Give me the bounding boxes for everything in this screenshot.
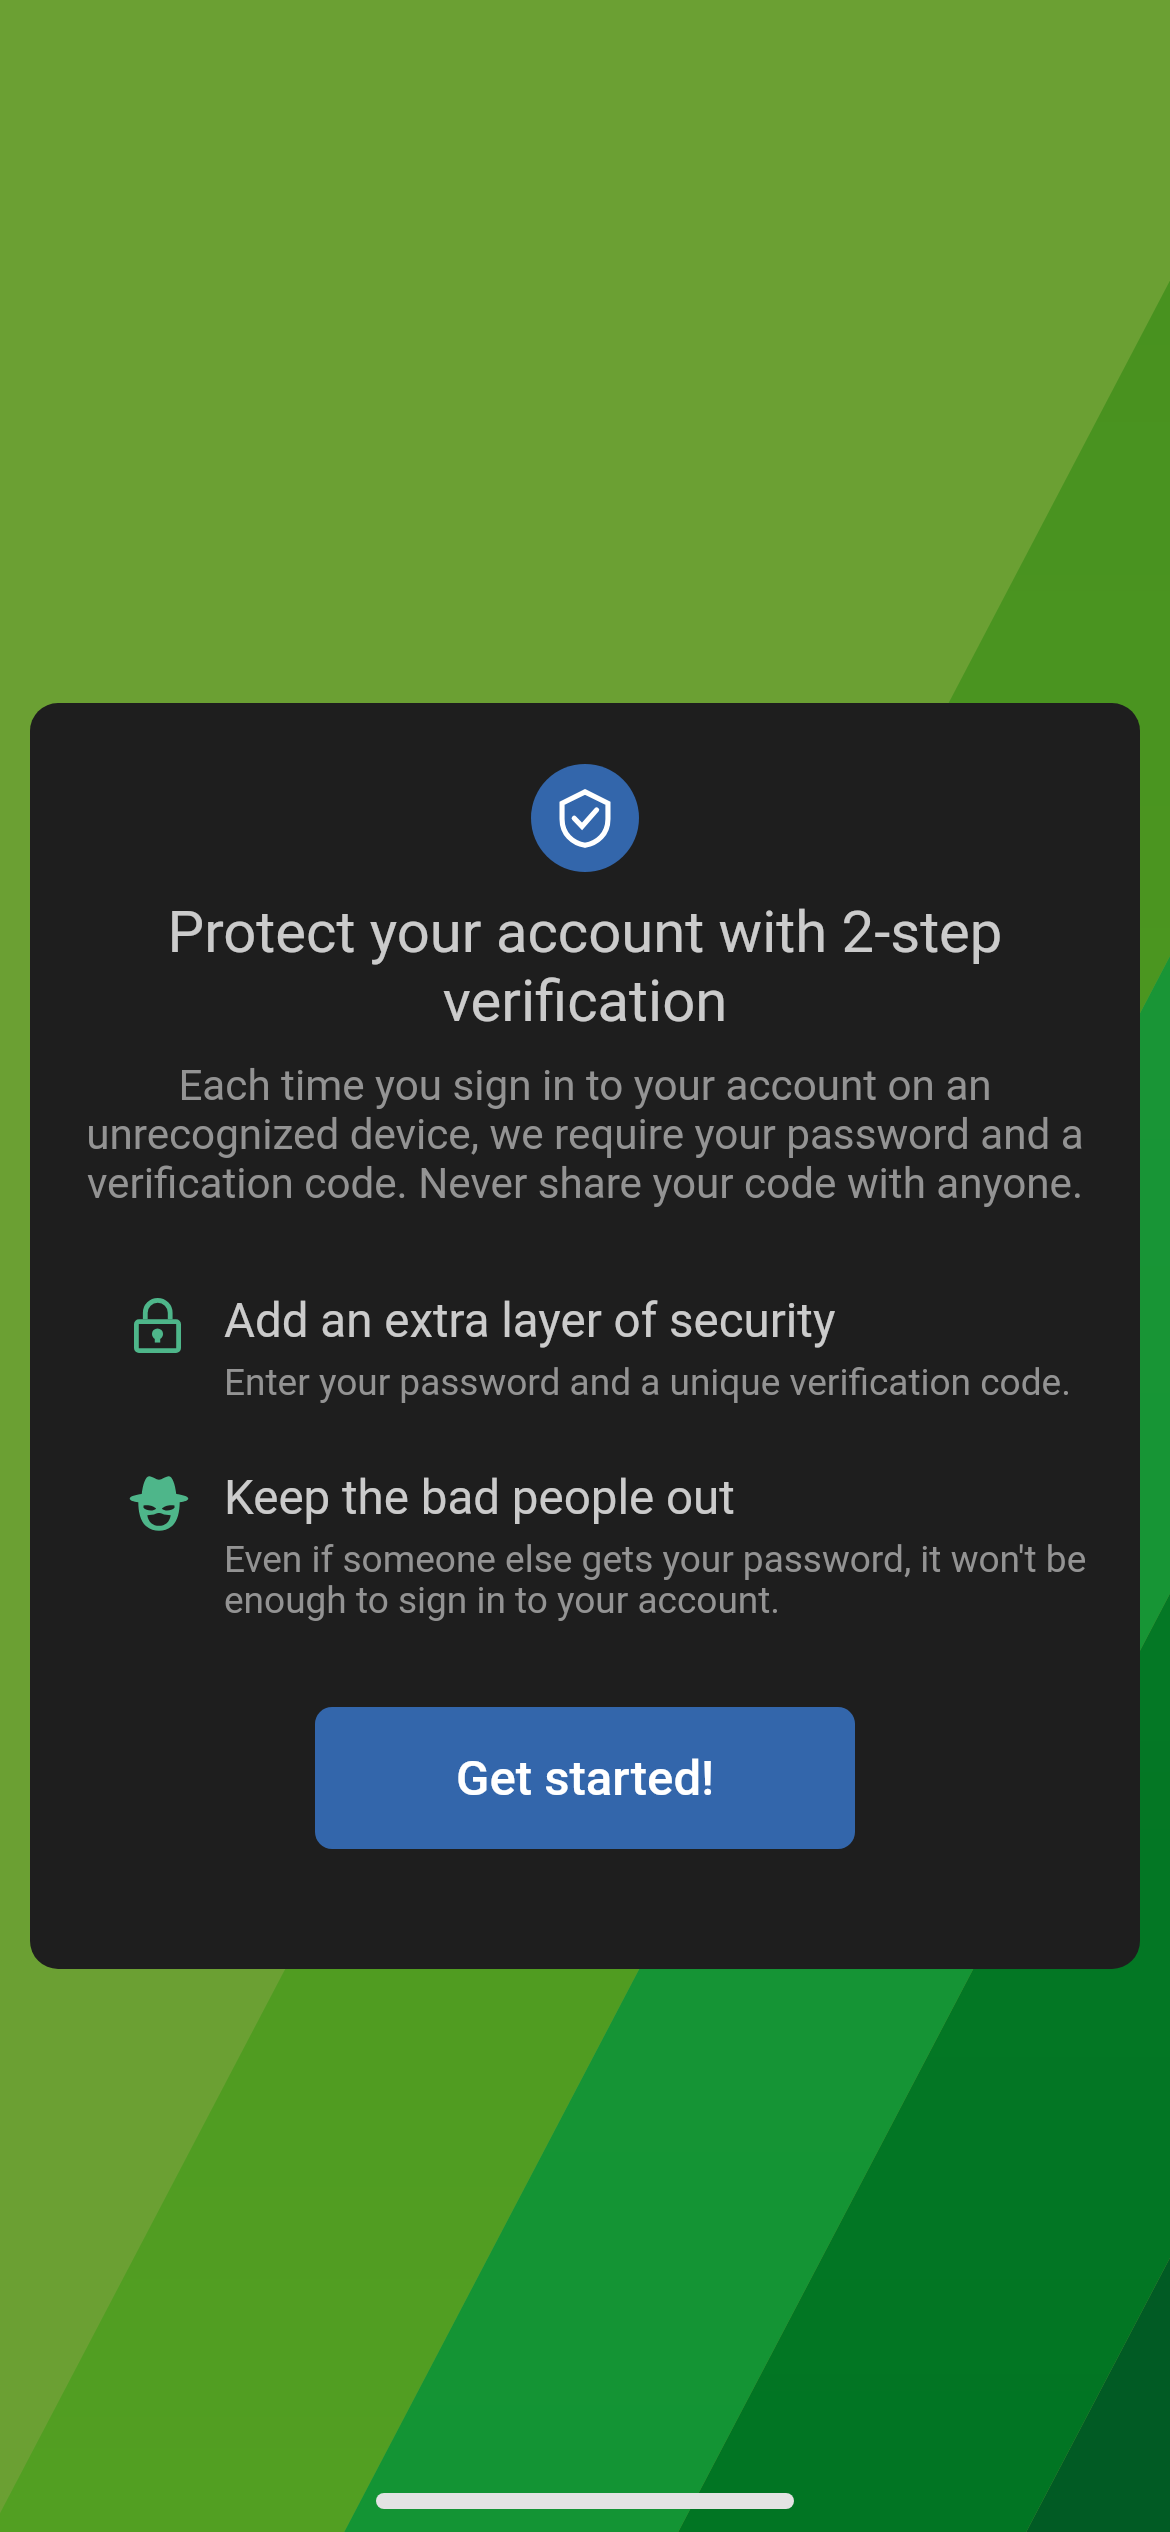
staticText: Protect your account with 2-step verific… xyxy=(85,898,1085,1036)
other: Security shield xyxy=(531,764,639,872)
staticText: Enter your password and a unique verific… xyxy=(224,1361,1071,1404)
staticText: Even if someone else gets your password,… xyxy=(224,1538,1110,1622)
staticText: Add an extra layer of security xyxy=(224,1293,836,1349)
staticText: Keep the bad people out xyxy=(224,1470,735,1526)
staticText: Get started! xyxy=(456,1750,715,1807)
button[interactable]: Get started! xyxy=(315,1707,855,1849)
staticText: Each time you sign in to your account on… xyxy=(70,1061,1100,1208)
